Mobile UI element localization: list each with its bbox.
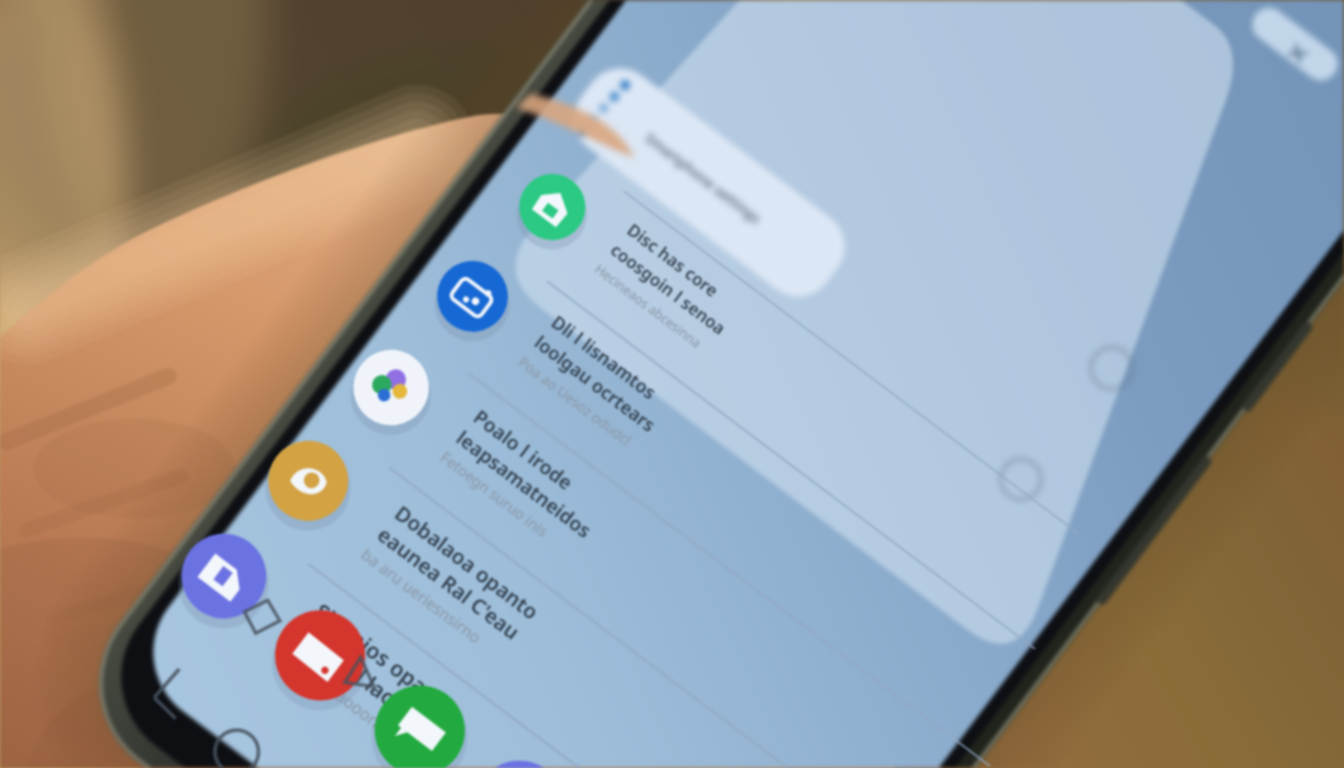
button[interactable]: Hand holding a phone showing a list of a… [0,0,1344,768]
